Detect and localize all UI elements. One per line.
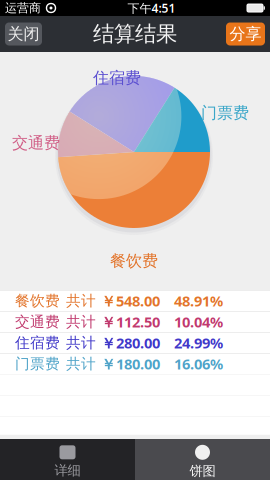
- staticText: ￥180.00: [101, 354, 160, 374]
- staticText: 分享: [229, 24, 261, 44]
- button[interactable]: 饼图: [135, 439, 270, 480]
- staticText: 下午4:51: [127, 0, 175, 16]
- staticText: 结算结果: [93, 21, 177, 47]
- staticText: 48.91%: [174, 291, 223, 310]
- staticText: 10.04%: [174, 312, 223, 331]
- staticText: 餐饮费: [15, 292, 60, 310]
- staticText: 运营商: [5, 1, 41, 15]
- staticText: 交通费: [12, 133, 60, 153]
- staticText: ￥280.00: [101, 333, 160, 353]
- staticText: 共计: [66, 334, 96, 352]
- staticText: ￥548.00: [101, 291, 160, 311]
- staticText: 详细: [54, 462, 80, 479]
- staticText: 共计: [66, 313, 96, 331]
- staticText: 门票费: [201, 103, 249, 123]
- staticText: 餐饮费: [110, 251, 158, 271]
- staticText: 饼图: [189, 463, 215, 479]
- staticText: 门票费: [15, 355, 60, 373]
- staticText: 共计: [66, 355, 96, 373]
- button[interactable]: 分享: [226, 22, 265, 45]
- staticText: 16.06%: [174, 354, 223, 373]
- button[interactable]: 关闭: [5, 22, 42, 45]
- staticText: 住宿费: [15, 334, 60, 352]
- staticText: 交通费: [15, 313, 60, 331]
- staticText: ￥112.50: [101, 312, 160, 332]
- staticText: 24.99%: [174, 333, 223, 352]
- button[interactable]: 详细: [0, 439, 135, 480]
- staticText: 住宿费: [93, 68, 141, 88]
- staticText: 共计: [66, 292, 96, 310]
- staticText: 关闭: [7, 24, 39, 44]
